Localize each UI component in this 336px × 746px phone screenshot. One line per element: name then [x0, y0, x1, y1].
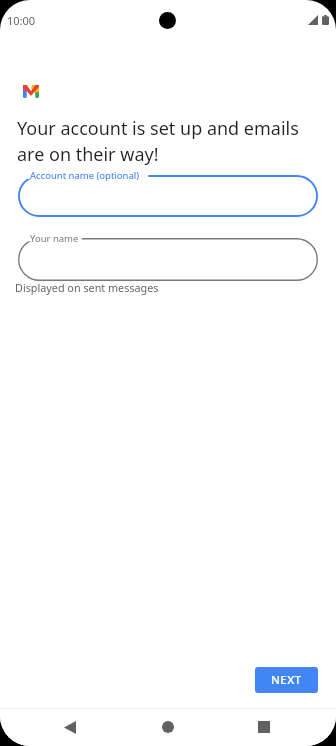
button[interactable]: Recent apps — [244, 708, 284, 746]
button[interactable]: Account name (optional) — [18, 175, 318, 217]
button[interactable]: Back — [50, 708, 90, 746]
button[interactable]: NEXT — [255, 667, 318, 693]
staticText: 10:00 — [7, 13, 36, 28]
button[interactable]: Home — [148, 708, 188, 746]
staticText: Account name (optional) — [30, 169, 140, 182]
staticText: Displayed on sent messages — [15, 280, 159, 295]
staticText: Your account is set up and emails are on… — [17, 116, 317, 166]
button[interactable]: Your name — [18, 238, 318, 281]
staticText: NEXT — [271, 672, 302, 688]
staticText: Your name — [30, 232, 79, 245]
